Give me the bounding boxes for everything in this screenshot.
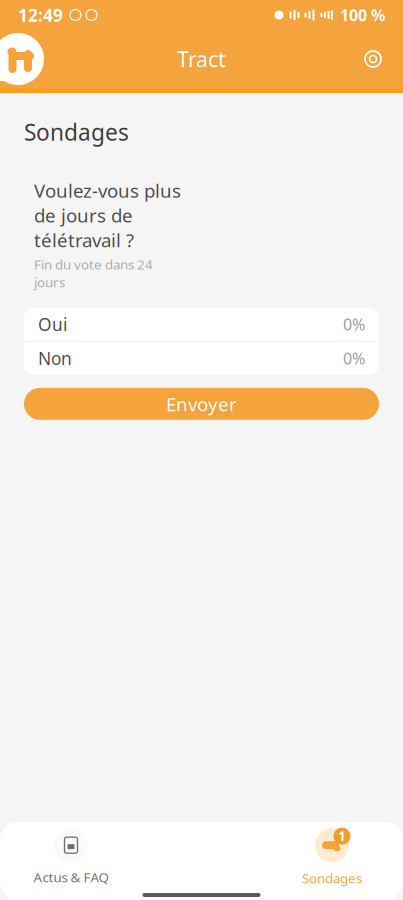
button[interactable]: Actus & FAQ: [6, 826, 136, 888]
button[interactable]: Paramètres: [351, 37, 395, 81]
button[interactable]: 1: [267, 826, 397, 888]
staticText: Oui: [38, 313, 67, 336]
staticText: Envoyer: [166, 391, 237, 416]
staticText: 100 %: [340, 4, 385, 26]
staticText: 0%: [343, 314, 365, 335]
button[interactable]: Envoyer: [24, 388, 379, 420]
staticText: 1: [338, 827, 346, 845]
button[interactable]: Oui: [24, 308, 379, 341]
staticText: Voulez-vous plus de jours de télétravail…: [34, 178, 181, 252]
button[interactable]: Non: [24, 341, 379, 375]
staticText: Sondages: [302, 869, 362, 887]
staticText: 0%: [343, 348, 365, 369]
staticText: Sondages: [24, 117, 129, 147]
staticText: Actus & FAQ: [33, 868, 108, 886]
staticText: Non: [38, 347, 72, 370]
staticText: 12:49: [18, 3, 63, 26]
staticText: Tract: [177, 45, 226, 73]
staticText: Fin du vote dans 24 jours: [34, 255, 153, 291]
